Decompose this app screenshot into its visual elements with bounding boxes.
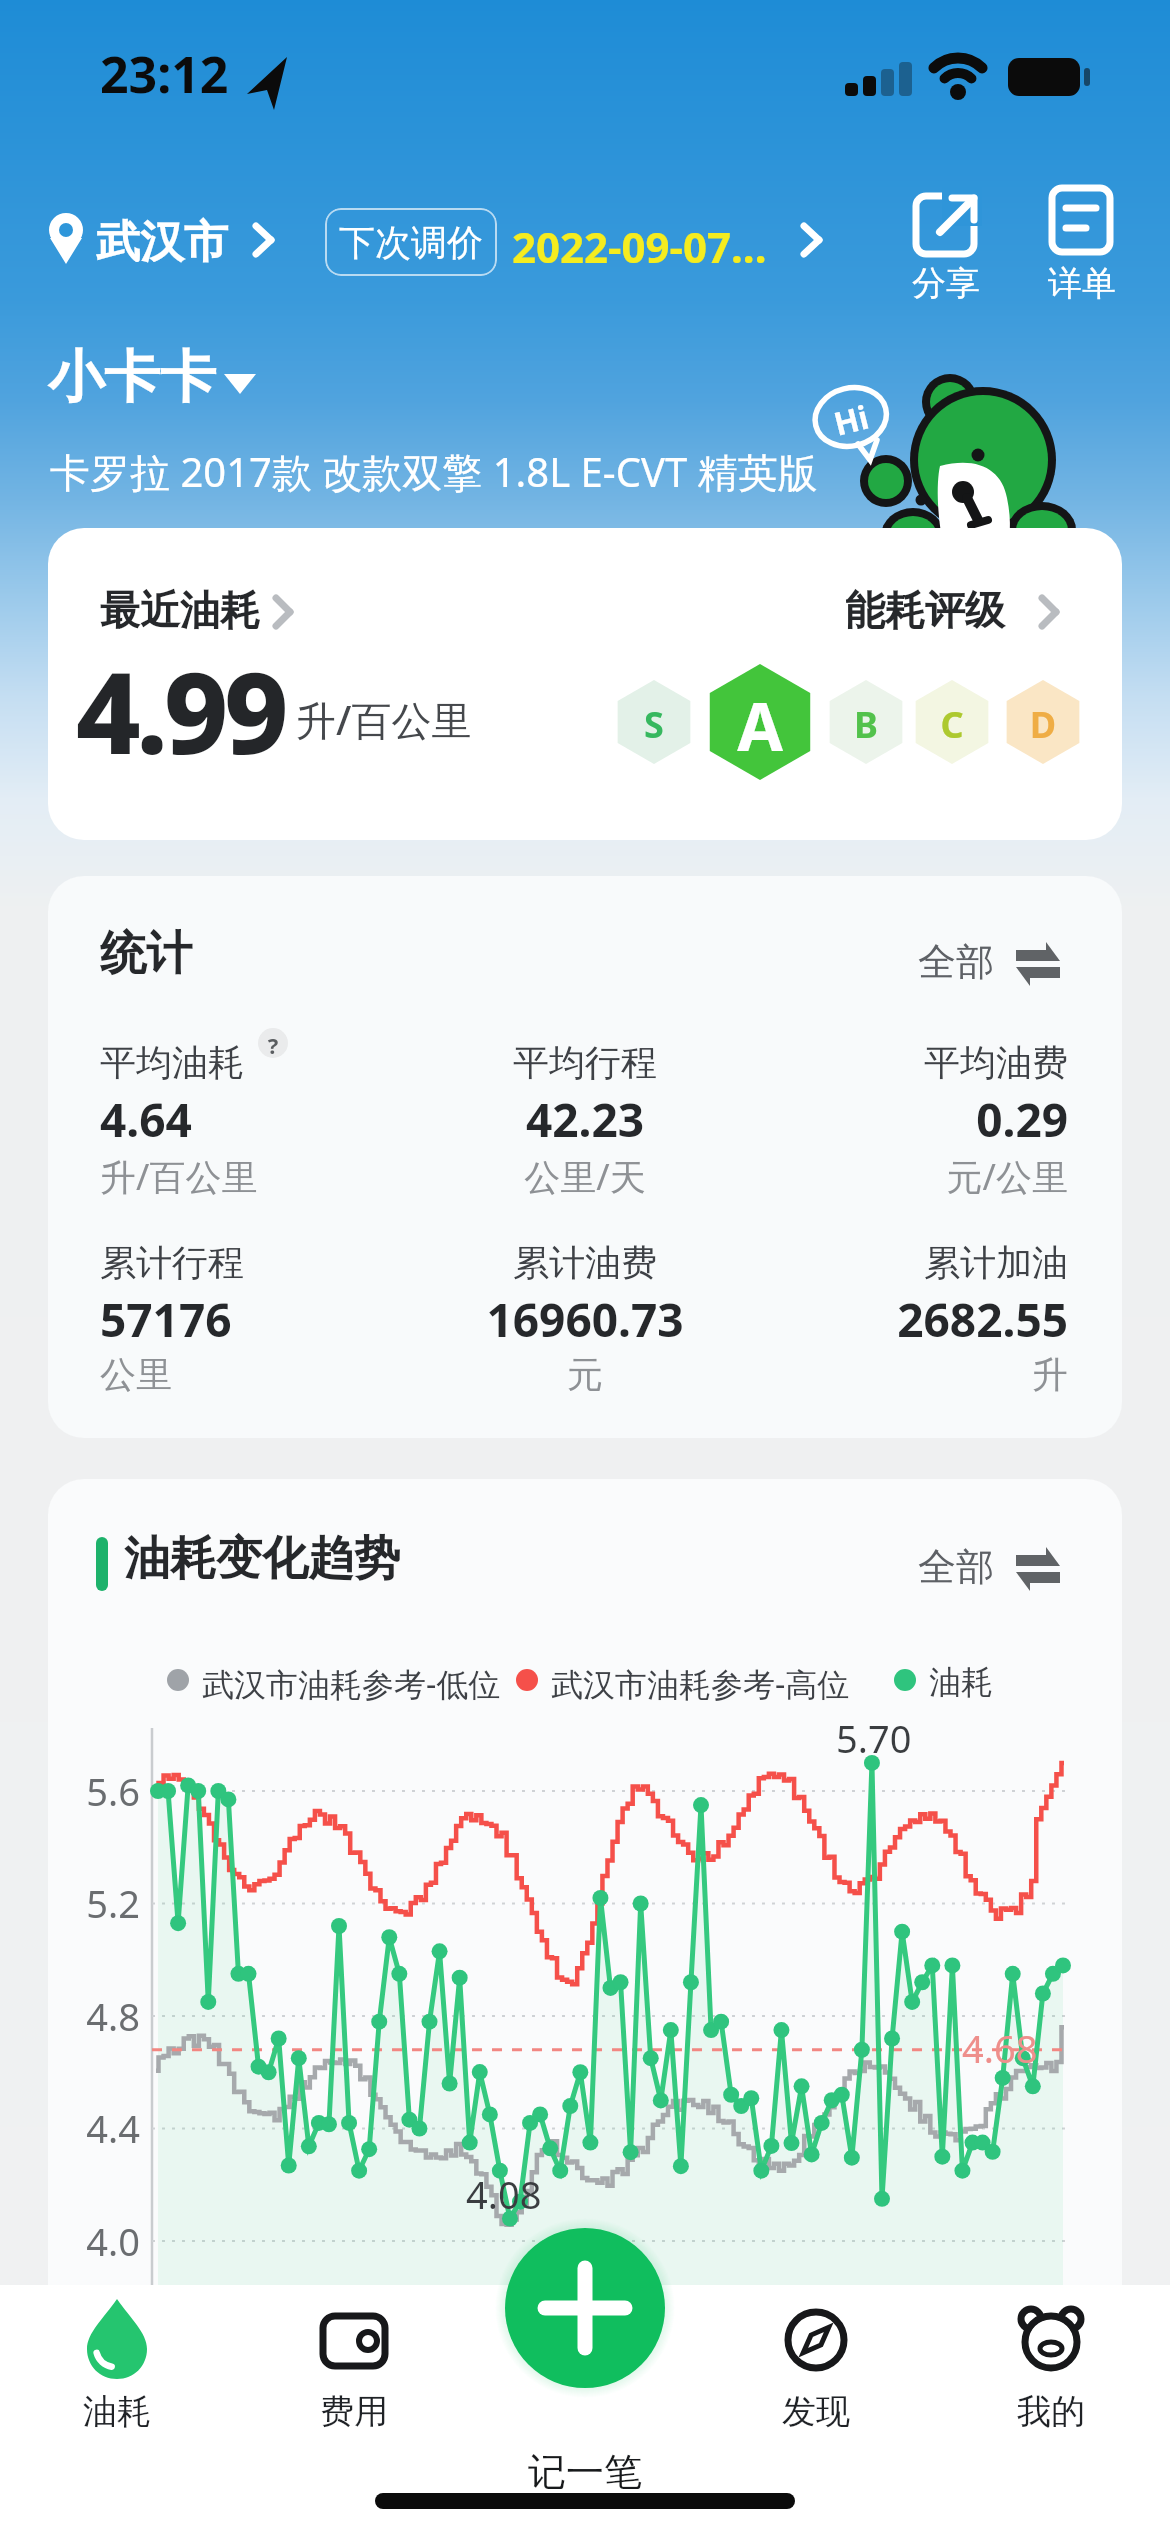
staticText: 5.6 [60, 1765, 140, 1817]
button[interactable] [505, 2228, 665, 2388]
staticText: 小卡卡 [48, 342, 216, 413]
staticText: 平均油耗 [100, 1040, 400, 1085]
button[interactable] [40, 2290, 195, 2440]
staticText: 升/百公里 [296, 692, 472, 747]
staticText: 2682.55 [768, 1288, 1068, 1351]
button[interactable] [90, 575, 330, 645]
staticText: 4.68 [962, 2022, 1038, 2074]
button[interactable] [44, 340, 274, 415]
staticText: S [624, 700, 684, 749]
staticText: 分享 [912, 262, 980, 305]
staticText: 武汉市 [96, 215, 228, 270]
staticText: ? [258, 1030, 288, 1060]
staticText: 4.99 [76, 634, 285, 787]
button[interactable] [1040, 180, 1130, 310]
staticText: 0.29 [768, 1088, 1068, 1151]
staticText: 油耗 [929, 1662, 993, 1702]
staticText: B [836, 700, 896, 749]
staticText: D [1013, 700, 1073, 749]
staticText: 元 [435, 1352, 735, 1397]
staticText: Hi [829, 394, 874, 446]
staticText: 费用 [294, 2390, 414, 2433]
staticText: 最近油耗 [100, 585, 260, 635]
staticText: 累计行程 [100, 1240, 400, 1285]
staticText: 57176 [100, 1288, 400, 1351]
staticText: 4.4 [60, 2102, 140, 2154]
staticText: 卡罗拉 2017款 改款双擎 1.8L E-CVT 精英版 [50, 444, 818, 499]
staticText: 详单 [1048, 262, 1116, 305]
staticText: 5.2 [60, 1877, 140, 1929]
staticText: A [720, 680, 800, 770]
staticText: 能耗评级 [845, 585, 1005, 635]
button[interactable] [739, 2290, 894, 2440]
staticText: 元/公里 [768, 1152, 1068, 1201]
staticText: 油耗 [57, 2390, 177, 2433]
staticText: 我的 [991, 2390, 1111, 2433]
staticText: C [922, 700, 982, 749]
staticText: 2022-09-07... [512, 218, 767, 275]
staticText: 发现 [756, 2390, 876, 2433]
button[interactable] [900, 180, 990, 310]
staticText: 4.08 [466, 2168, 542, 2220]
staticText: 平均油费 [768, 1040, 1068, 1085]
button[interactable] [800, 575, 1070, 645]
staticText: 累计加油 [768, 1240, 1068, 1285]
button[interactable] [908, 1531, 1068, 1601]
staticText: 累计油费 [435, 1240, 735, 1285]
button[interactable]: 下次调价 [325, 208, 497, 276]
staticText: 4.64 [100, 1088, 400, 1151]
staticText: 统计 [100, 925, 192, 983]
staticText: 武汉市油耗参考-低位 [202, 1662, 501, 1706]
staticText: 油耗变化趋势 [124, 1530, 400, 1588]
staticText: 全部 [918, 1543, 994, 1591]
button[interactable] [40, 205, 290, 280]
button[interactable] [277, 2290, 432, 2440]
staticText: 公里/天 [435, 1152, 735, 1201]
staticText: 全部 [918, 938, 994, 986]
staticText: 下次调价 [339, 220, 483, 265]
staticText: 23:12 [100, 40, 229, 108]
staticText: 记一笔 [525, 2448, 645, 2496]
staticText: 42.23 [435, 1088, 735, 1151]
button[interactable] [974, 2290, 1129, 2440]
staticText: 平均行程 [435, 1040, 735, 1085]
staticText: 4.0 [60, 2215, 140, 2267]
staticText: 公里 [100, 1352, 400, 1397]
staticText: 5.70 [836, 1712, 912, 1764]
staticText: 16960.73 [435, 1288, 735, 1351]
staticText: 升 [768, 1352, 1068, 1397]
button[interactable] [908, 926, 1068, 996]
staticText: 升/百公里 [100, 1152, 400, 1201]
staticText: 武汉市油耗参考-高位 [551, 1662, 850, 1706]
staticText: 4.8 [60, 1990, 140, 2042]
